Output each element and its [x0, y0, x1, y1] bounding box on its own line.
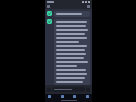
button[interactable]: Apps	[73, 95, 76, 98]
button[interactable]: Home	[61, 95, 64, 98]
button[interactable]: Menu	[47, 5, 50, 8]
button[interactable]	[52, 87, 85, 92]
button[interactable]: Back	[48, 95, 51, 98]
button[interactable]: Copy	[54, 19, 90, 85]
button[interactable]: New chat	[87, 5, 90, 8]
button[interactable]: Tabs	[86, 95, 89, 98]
button[interactable]	[54, 11, 90, 17]
